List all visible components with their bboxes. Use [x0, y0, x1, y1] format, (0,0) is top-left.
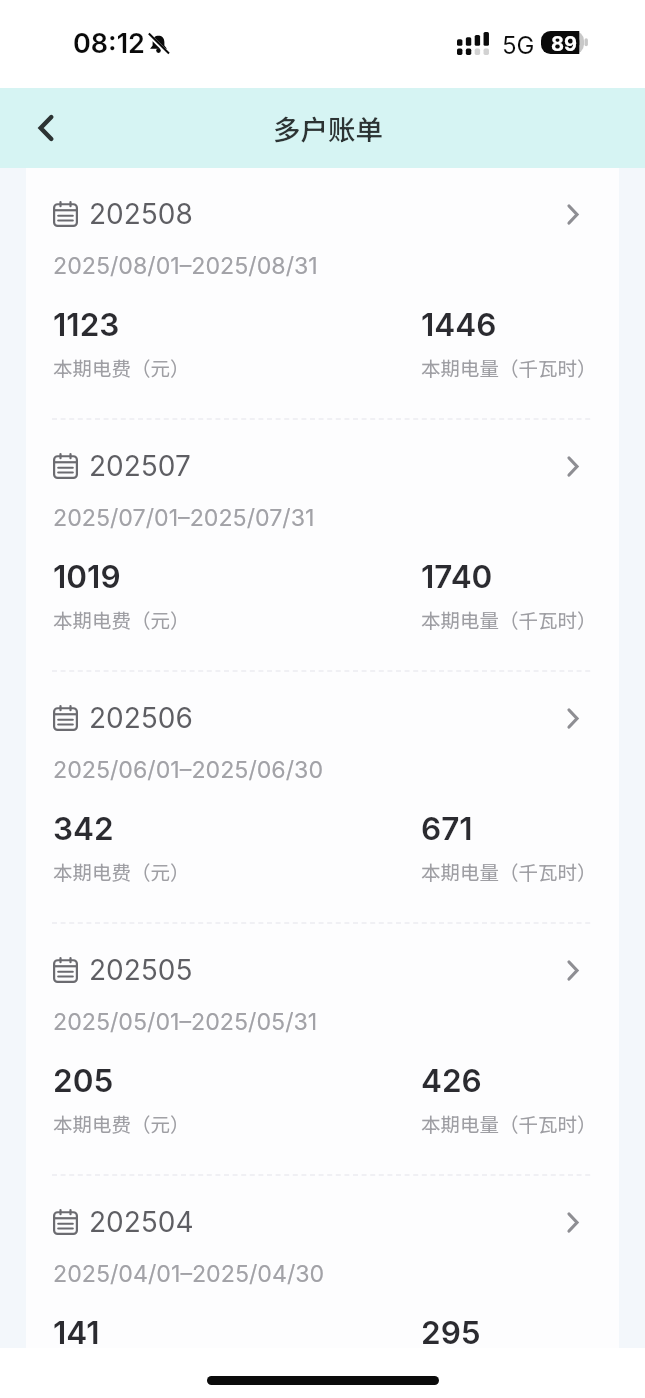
staticText: 本期电费（元） [53, 353, 190, 381]
staticText: 1740 [421, 557, 493, 595]
staticText: 202505 [89, 953, 193, 987]
staticText: 本期电费（元） [53, 857, 190, 885]
staticText: 本期电量（千瓦时） [421, 1109, 592, 1137]
staticText: 本期电量（千瓦时） [421, 857, 592, 885]
staticText: 2025/07/01–2025/07/31 [53, 504, 315, 532]
staticText: 本期电费（元） [53, 605, 190, 633]
staticText: 202508 [89, 197, 193, 231]
staticText: 5G [502, 31, 535, 60]
staticText: 1123 [53, 305, 120, 343]
button[interactable]: Back [8, 90, 84, 166]
staticText: 本期电量（千瓦时） [421, 605, 592, 633]
staticText: 多户账单 [273, 108, 383, 148]
staticText: 2025/06/01–2025/06/30 [53, 756, 324, 784]
staticText: 08:12 [73, 27, 145, 60]
staticText: 426 [421, 1061, 482, 1099]
staticText: 2025/04/01–2025/04/30 [53, 1260, 325, 1288]
button[interactable]: 202504 [26, 1176, 619, 1348]
staticText: 2025/05/01–2025/05/31 [53, 1008, 318, 1036]
staticText: 295 [421, 1313, 481, 1348]
staticText: 1019 [53, 557, 121, 595]
staticText: 89 [551, 32, 578, 55]
staticText: 202504 [89, 1205, 194, 1239]
staticText: 205 [53, 1061, 114, 1099]
button[interactable]: 202508 [26, 168, 619, 418]
staticText: 342 [53, 809, 114, 847]
staticText: 202507 [89, 449, 191, 483]
staticText: 本期电量（千瓦时） [421, 353, 592, 381]
staticText: 本期电费（元） [53, 1109, 190, 1137]
staticText: 2025/08/01–2025/08/31 [53, 252, 318, 280]
staticText: 1446 [421, 305, 497, 343]
staticText: 141 [53, 1313, 100, 1348]
button[interactable]: 202507 [26, 420, 619, 670]
button[interactable]: 202505 [26, 924, 619, 1174]
staticText: 671 [421, 809, 473, 847]
staticText: 202506 [89, 701, 193, 735]
button[interactable]: 202506 [26, 672, 619, 922]
